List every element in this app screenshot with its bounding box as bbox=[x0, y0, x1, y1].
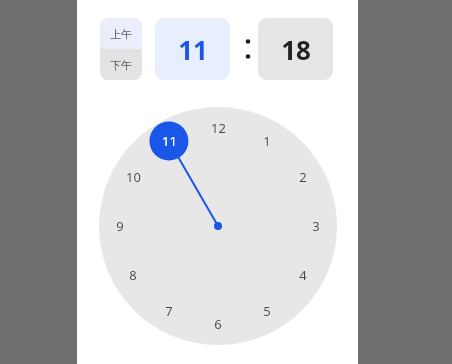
staticText: 11 bbox=[178, 32, 208, 67]
staticText: 3 bbox=[312, 217, 320, 235]
staticText: 11 bbox=[162, 132, 177, 150]
staticText: 1 bbox=[263, 132, 271, 150]
staticText: 4 bbox=[299, 266, 307, 284]
button[interactable]: Hour bbox=[155, 18, 230, 80]
staticText: 12 bbox=[211, 119, 226, 137]
staticText: 7 bbox=[165, 302, 173, 320]
staticText: 下午 bbox=[110, 58, 132, 72]
staticText: 9 bbox=[116, 217, 124, 235]
staticText: 18 bbox=[281, 32, 311, 67]
staticText: 8 bbox=[129, 266, 137, 284]
button[interactable]: Minute bbox=[258, 18, 333, 80]
button[interactable]: Clock dial bbox=[99, 107, 337, 345]
button[interactable]: 下午 bbox=[100, 49, 142, 80]
staticText: 6 bbox=[214, 315, 222, 333]
staticText: 上午 bbox=[110, 27, 132, 41]
button[interactable]: 上午 bbox=[100, 18, 142, 49]
staticText: 5 bbox=[263, 302, 271, 320]
staticText: 2 bbox=[299, 168, 307, 186]
staticText: 10 bbox=[126, 168, 141, 186]
